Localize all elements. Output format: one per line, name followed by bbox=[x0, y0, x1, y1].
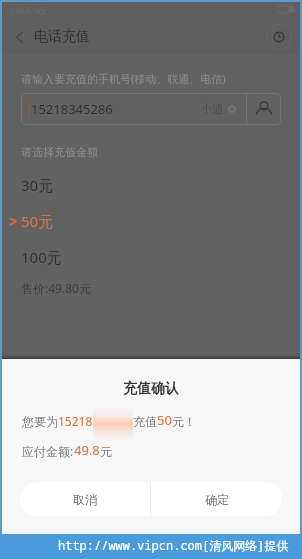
staticText: 售价:49.80元 bbox=[21, 280, 91, 296]
staticText: 应付金额: bbox=[22, 443, 74, 459]
button[interactable]: 50元 bbox=[2, 203, 300, 239]
staticText: 50元 bbox=[21, 211, 54, 231]
staticText: 请选择充值金额 bbox=[21, 145, 98, 159]
button[interactable]: Recharge history bbox=[266, 24, 292, 50]
staticText: 请输入要充值的手机号(移动、联通、电信) bbox=[21, 71, 226, 86]
staticText: 100元 bbox=[21, 247, 62, 267]
button[interactable]: 100元 bbox=[2, 239, 300, 275]
staticText: 您要为 bbox=[22, 414, 58, 429]
button[interactable]: Clear bbox=[226, 103, 238, 115]
button[interactable]: 确定 bbox=[151, 482, 282, 516]
staticText: 30元 bbox=[21, 175, 54, 195]
staticText: 49.8 bbox=[74, 441, 100, 459]
staticText: 充值 bbox=[133, 414, 157, 429]
staticText: 50 bbox=[157, 411, 172, 429]
staticText: http://www.vipcn.com[清风网络]提供 bbox=[58, 537, 289, 553]
staticText: 取消 bbox=[73, 492, 97, 507]
staticText: 元！ bbox=[172, 414, 196, 429]
button[interactable]: 取消 bbox=[20, 482, 150, 516]
button[interactable]: Choose contact bbox=[247, 93, 281, 125]
button[interactable]: Back bbox=[6, 24, 32, 50]
button[interactable]: 30元 bbox=[2, 167, 300, 203]
staticText: 元 bbox=[100, 444, 112, 459]
staticText: 确定 bbox=[205, 492, 229, 507]
staticText: 电话充值 bbox=[34, 28, 90, 46]
staticText: 傍晚6:45 bbox=[6, 4, 46, 18]
staticText: 小通 bbox=[201, 102, 223, 116]
staticText: 充值确认 bbox=[2, 380, 300, 398]
staticText: 15218345286 bbox=[31, 100, 113, 118]
staticText: 15218 bbox=[58, 413, 93, 429]
